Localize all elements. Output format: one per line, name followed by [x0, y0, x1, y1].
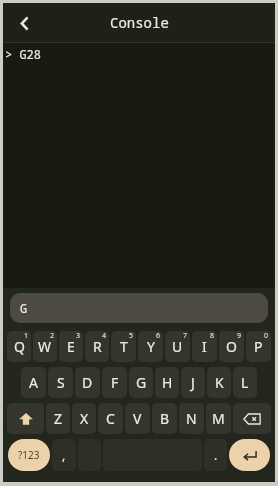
- staticText: U: [172, 337, 183, 356]
- staticText: I: [202, 337, 207, 356]
- button[interactable]: J: [181, 367, 205, 398]
- button[interactable]: Backspace: [233, 403, 271, 434]
- button[interactable]: H: [155, 367, 179, 398]
- button[interactable]: G: [10, 293, 268, 323]
- button[interactable]: Shift: [7, 403, 44, 434]
- button[interactable]: R: [85, 331, 109, 362]
- button[interactable]: V: [125, 403, 150, 434]
- staticText: N: [186, 409, 197, 428]
- staticText: F: [111, 373, 119, 392]
- staticText: 4: [102, 331, 107, 341]
- staticText: Console: [110, 13, 169, 32]
- staticText: 1: [24, 331, 29, 341]
- button[interactable]: I: [192, 331, 217, 362]
- button[interactable]: X: [72, 403, 96, 434]
- button[interactable]: K: [207, 367, 231, 398]
- staticText: 6: [156, 331, 161, 341]
- staticText: 7: [183, 331, 188, 341]
- staticText: M: [212, 409, 225, 428]
- button[interactable]: C: [98, 403, 123, 434]
- button[interactable]: N: [179, 403, 204, 434]
- staticText: 0: [264, 331, 269, 341]
- button[interactable]: S: [48, 367, 73, 398]
- staticText: 3: [76, 331, 81, 341]
- staticText: R: [93, 337, 102, 356]
- staticText: G: [136, 373, 147, 392]
- staticText: S: [57, 373, 65, 392]
- staticText: Y: [147, 337, 155, 356]
- button[interactable]: Q: [7, 331, 31, 362]
- button[interactable]: ?123: [8, 439, 50, 471]
- staticText: 5: [129, 331, 134, 341]
- staticText: C: [106, 409, 115, 428]
- staticText: H: [162, 373, 173, 392]
- staticText: ,: [62, 447, 66, 463]
- button[interactable]: D: [75, 367, 100, 398]
- staticText: B: [160, 409, 170, 428]
- staticText: W: [38, 337, 52, 356]
- button[interactable]: G: [129, 367, 153, 398]
- staticText: E: [67, 337, 75, 356]
- staticText: 8: [210, 331, 215, 341]
- staticText: P: [254, 337, 263, 356]
- staticText: Z: [54, 409, 63, 428]
- staticText: Q: [14, 337, 25, 356]
- button[interactable]: Back: [8, 7, 40, 39]
- staticText: T: [120, 337, 128, 356]
- button[interactable]: Y: [138, 331, 163, 362]
- button[interactable]: P: [246, 331, 271, 362]
- staticText: > G28: [5, 46, 42, 62]
- staticText: V: [133, 409, 142, 428]
- staticText: 2: [50, 331, 55, 341]
- button[interactable]: A: [21, 367, 46, 398]
- staticText: O: [226, 337, 237, 356]
- staticText: G: [20, 300, 28, 316]
- button[interactable]: F: [102, 367, 127, 398]
- staticText: A: [29, 373, 38, 392]
- button[interactable]: U: [165, 331, 190, 362]
- staticText: K: [215, 373, 224, 392]
- button[interactable]: .: [204, 439, 227, 471]
- button[interactable]: W: [33, 331, 57, 362]
- button[interactable]: Z: [46, 403, 70, 434]
- button[interactable]: Enter: [229, 439, 270, 471]
- button[interactable]: L: [233, 367, 257, 398]
- button[interactable]: O: [219, 331, 244, 362]
- staticText: X: [80, 409, 89, 428]
- button[interactable]: T: [111, 331, 136, 362]
- staticText: D: [82, 373, 93, 392]
- staticText: ?123: [18, 448, 40, 462]
- staticText: J: [191, 373, 195, 392]
- button[interactable]: B: [152, 403, 177, 434]
- button[interactable]: ,: [52, 439, 76, 471]
- staticText: L: [241, 373, 249, 392]
- staticText: .: [214, 447, 218, 463]
- button[interactable]: M: [206, 403, 231, 434]
- button[interactable]: E: [59, 331, 83, 362]
- staticText: 9: [237, 331, 242, 341]
